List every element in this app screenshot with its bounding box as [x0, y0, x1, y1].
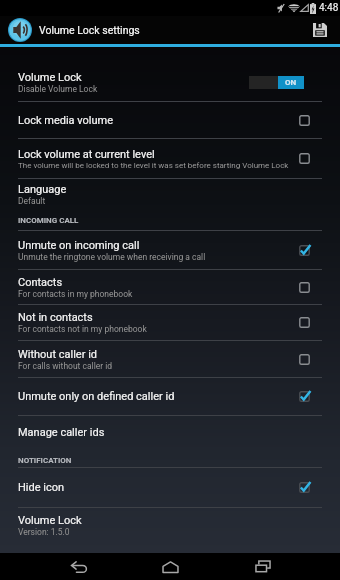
- staticText: Contacts: [18, 276, 63, 289]
- staticText: Hide icon: [18, 481, 65, 494]
- button[interactable]: Back: [49, 553, 109, 580]
- button[interactable]: Lock volume at current level: [0, 139, 340, 178]
- button[interactable]: Unmute only on defined caller id: [0, 378, 340, 415]
- staticText: Not in contacts: [18, 311, 93, 324]
- staticText: Volume Lock: [18, 514, 82, 527]
- staticText: Version: 1.5.0: [18, 527, 70, 537]
- staticText: Default: [18, 196, 46, 206]
- staticText: 4:48: [319, 2, 339, 14]
- staticText: Lock media volume: [18, 114, 114, 127]
- staticText: Lock volume at current level: [18, 148, 155, 161]
- staticText: For contacts not in my phonebook: [18, 324, 147, 334]
- button[interactable]: Recents: [233, 553, 293, 580]
- button[interactable]: Home: [140, 553, 200, 580]
- staticText: The volume will be locked to the level i…: [18, 161, 289, 170]
- staticText: For contacts in my phonebook: [18, 289, 133, 299]
- button[interactable]: Unmute on incoming call: [0, 231, 340, 269]
- button[interactable]: Language: [0, 179, 340, 214]
- button[interactable]: Not in contacts: [0, 305, 340, 340]
- button[interactable]: Without caller id: [0, 341, 340, 377]
- button[interactable]: Save: [307, 17, 333, 43]
- staticText: Disable Volume Lock: [18, 84, 98, 94]
- staticText: INCOMING CALL: [18, 216, 79, 225]
- staticText: Unmute on incoming call: [18, 239, 140, 252]
- staticText: Manage caller ids: [18, 426, 105, 439]
- staticText: Volume Lock: [18, 71, 82, 84]
- button[interactable]: Volume Lock: [0, 63, 340, 101]
- button[interactable]: Hide icon: [0, 468, 340, 507]
- staticText: Unmute the ringtone volume when receivin…: [18, 252, 206, 262]
- staticText: ON: [285, 78, 297, 87]
- staticText: For calls without caller id: [18, 361, 113, 371]
- staticText: Language: [18, 183, 67, 196]
- button[interactable]: Manage caller ids: [0, 416, 340, 453]
- staticText: Unmute only on defined caller id: [18, 390, 175, 403]
- button[interactable]: Contacts: [0, 270, 340, 304]
- staticText: Without caller id: [18, 348, 98, 361]
- button[interactable]: Lock media volume: [0, 102, 340, 138]
- staticText: NOTIFICATION: [18, 456, 72, 465]
- staticText: Volume Lock settings: [39, 24, 140, 36]
- button[interactable]: Volume Lock: [0, 508, 340, 548]
